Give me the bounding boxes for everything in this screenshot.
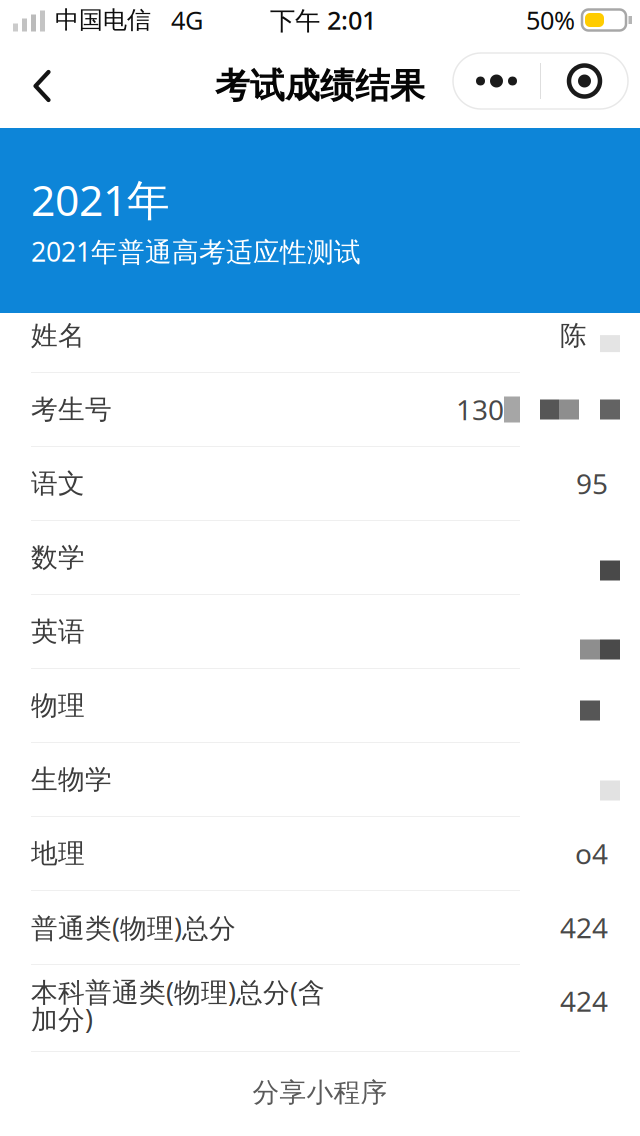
staticText: 物理 <box>31 689 85 722</box>
staticText: 50% <box>526 3 575 37</box>
button[interactable]: Back <box>14 44 70 128</box>
staticText: o4 <box>575 835 608 872</box>
staticText: 地理 <box>31 837 85 870</box>
staticText: 424 <box>560 909 608 946</box>
staticText: 加分) <box>31 1001 93 1036</box>
staticText: 陈 <box>560 319 587 352</box>
staticText: 2021年 <box>31 171 170 228</box>
staticText: 424 <box>560 982 608 1020</box>
staticText: 中国电信 <box>55 5 151 35</box>
staticText: 分享小程序 <box>252 1076 387 1109</box>
staticText: 本科普通类(物理)总分(含 <box>31 974 325 1009</box>
staticText: 95 <box>576 465 608 502</box>
staticText: 2021年普通高考适应性测试 <box>31 234 361 269</box>
staticText: 下午 2:01 <box>270 3 376 37</box>
staticText: 4G <box>171 3 203 37</box>
staticText: 语文 <box>31 467 85 500</box>
staticText: 姓名 <box>31 319 85 352</box>
button[interactable]: More options <box>453 53 540 109</box>
staticText: 生物学 <box>31 763 112 796</box>
staticText: 考试成绩结果 <box>215 65 425 107</box>
button[interactable]: Close mini program <box>541 53 628 109</box>
staticText: 考生号 <box>31 393 112 426</box>
staticText: 英语 <box>31 615 85 648</box>
staticText: 普通类(物理)总分 <box>31 910 236 945</box>
staticText: 数学 <box>31 541 85 574</box>
staticText: 130 <box>456 391 504 428</box>
